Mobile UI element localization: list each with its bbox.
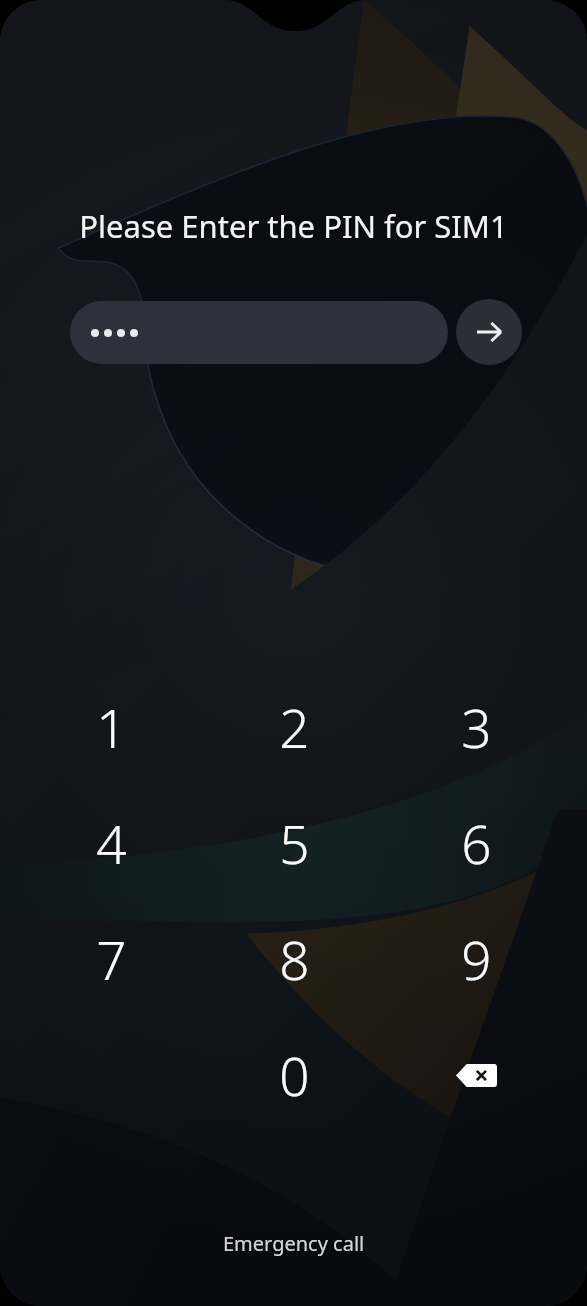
- button[interactable]: 8: [203, 920, 385, 998]
- button[interactable]: 9: [385, 920, 567, 998]
- staticText: 3: [461, 691, 492, 763]
- staticText: Emergency call: [223, 1230, 365, 1257]
- button[interactable]: 4: [20, 804, 203, 882]
- staticText: 9: [461, 923, 492, 995]
- staticText: 0: [279, 1039, 310, 1111]
- button[interactable]: 0: [203, 1036, 385, 1114]
- staticText: 1: [96, 691, 127, 763]
- staticText: 8: [279, 923, 310, 995]
- button[interactable]: Emergency call: [209, 1224, 379, 1263]
- button[interactable]: 5: [203, 804, 385, 882]
- button[interactable]: 2: [203, 688, 385, 766]
- staticText: 2: [279, 691, 310, 763]
- button[interactable]: 6: [385, 804, 567, 882]
- button[interactable]: 1: [20, 688, 203, 766]
- button[interactable]: 3: [385, 688, 567, 766]
- staticText: 6: [461, 807, 492, 879]
- staticText: 7: [96, 923, 127, 995]
- button[interactable]: Backspace: [385, 1036, 567, 1114]
- button[interactable]: Submit PIN: [456, 299, 522, 365]
- staticText: Please Enter the PIN for SIM1: [79, 205, 508, 247]
- staticText: 5: [279, 807, 310, 879]
- button[interactable]: PIN entry field: [70, 301, 448, 364]
- staticText: 4: [96, 807, 127, 879]
- button[interactable]: 7: [20, 920, 203, 998]
